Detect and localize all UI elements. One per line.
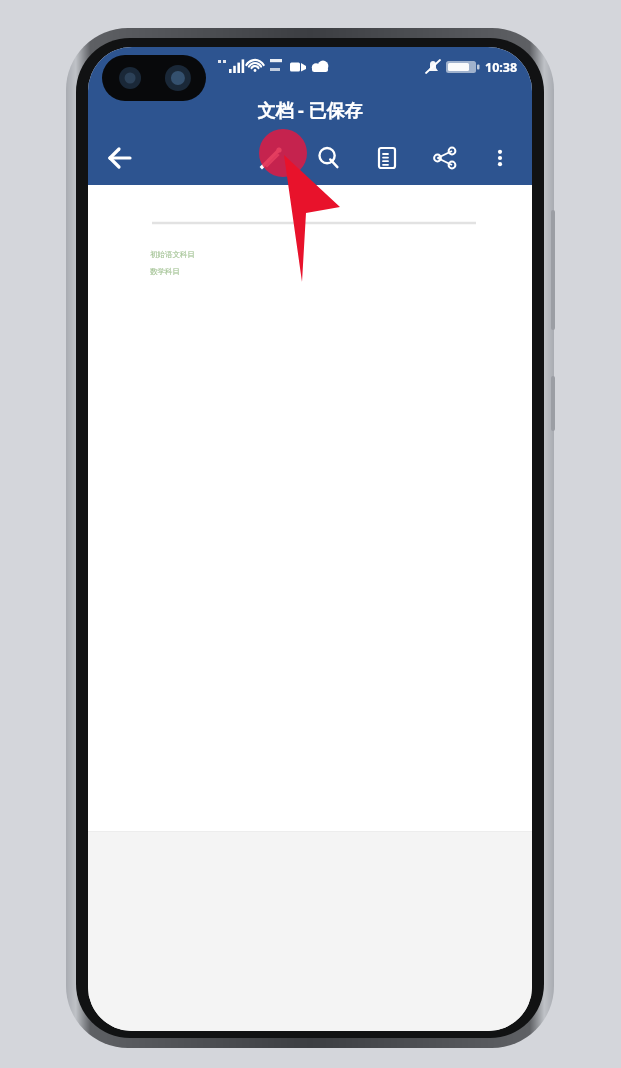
staticText: 初始语文科目 <box>150 250 195 259</box>
button[interactable]: Back <box>88 131 152 185</box>
button[interactable]: Edit <box>242 131 300 185</box>
staticText: 文档 - 已保存 <box>257 98 363 123</box>
button[interactable]: Search <box>300 131 358 185</box>
staticText: 数学科目 <box>150 267 180 276</box>
staticText: 10:38 <box>485 59 518 76</box>
button[interactable]: Outline <box>358 131 416 185</box>
button[interactable]: Share <box>416 131 474 185</box>
button[interactable]: More options <box>474 131 526 185</box>
